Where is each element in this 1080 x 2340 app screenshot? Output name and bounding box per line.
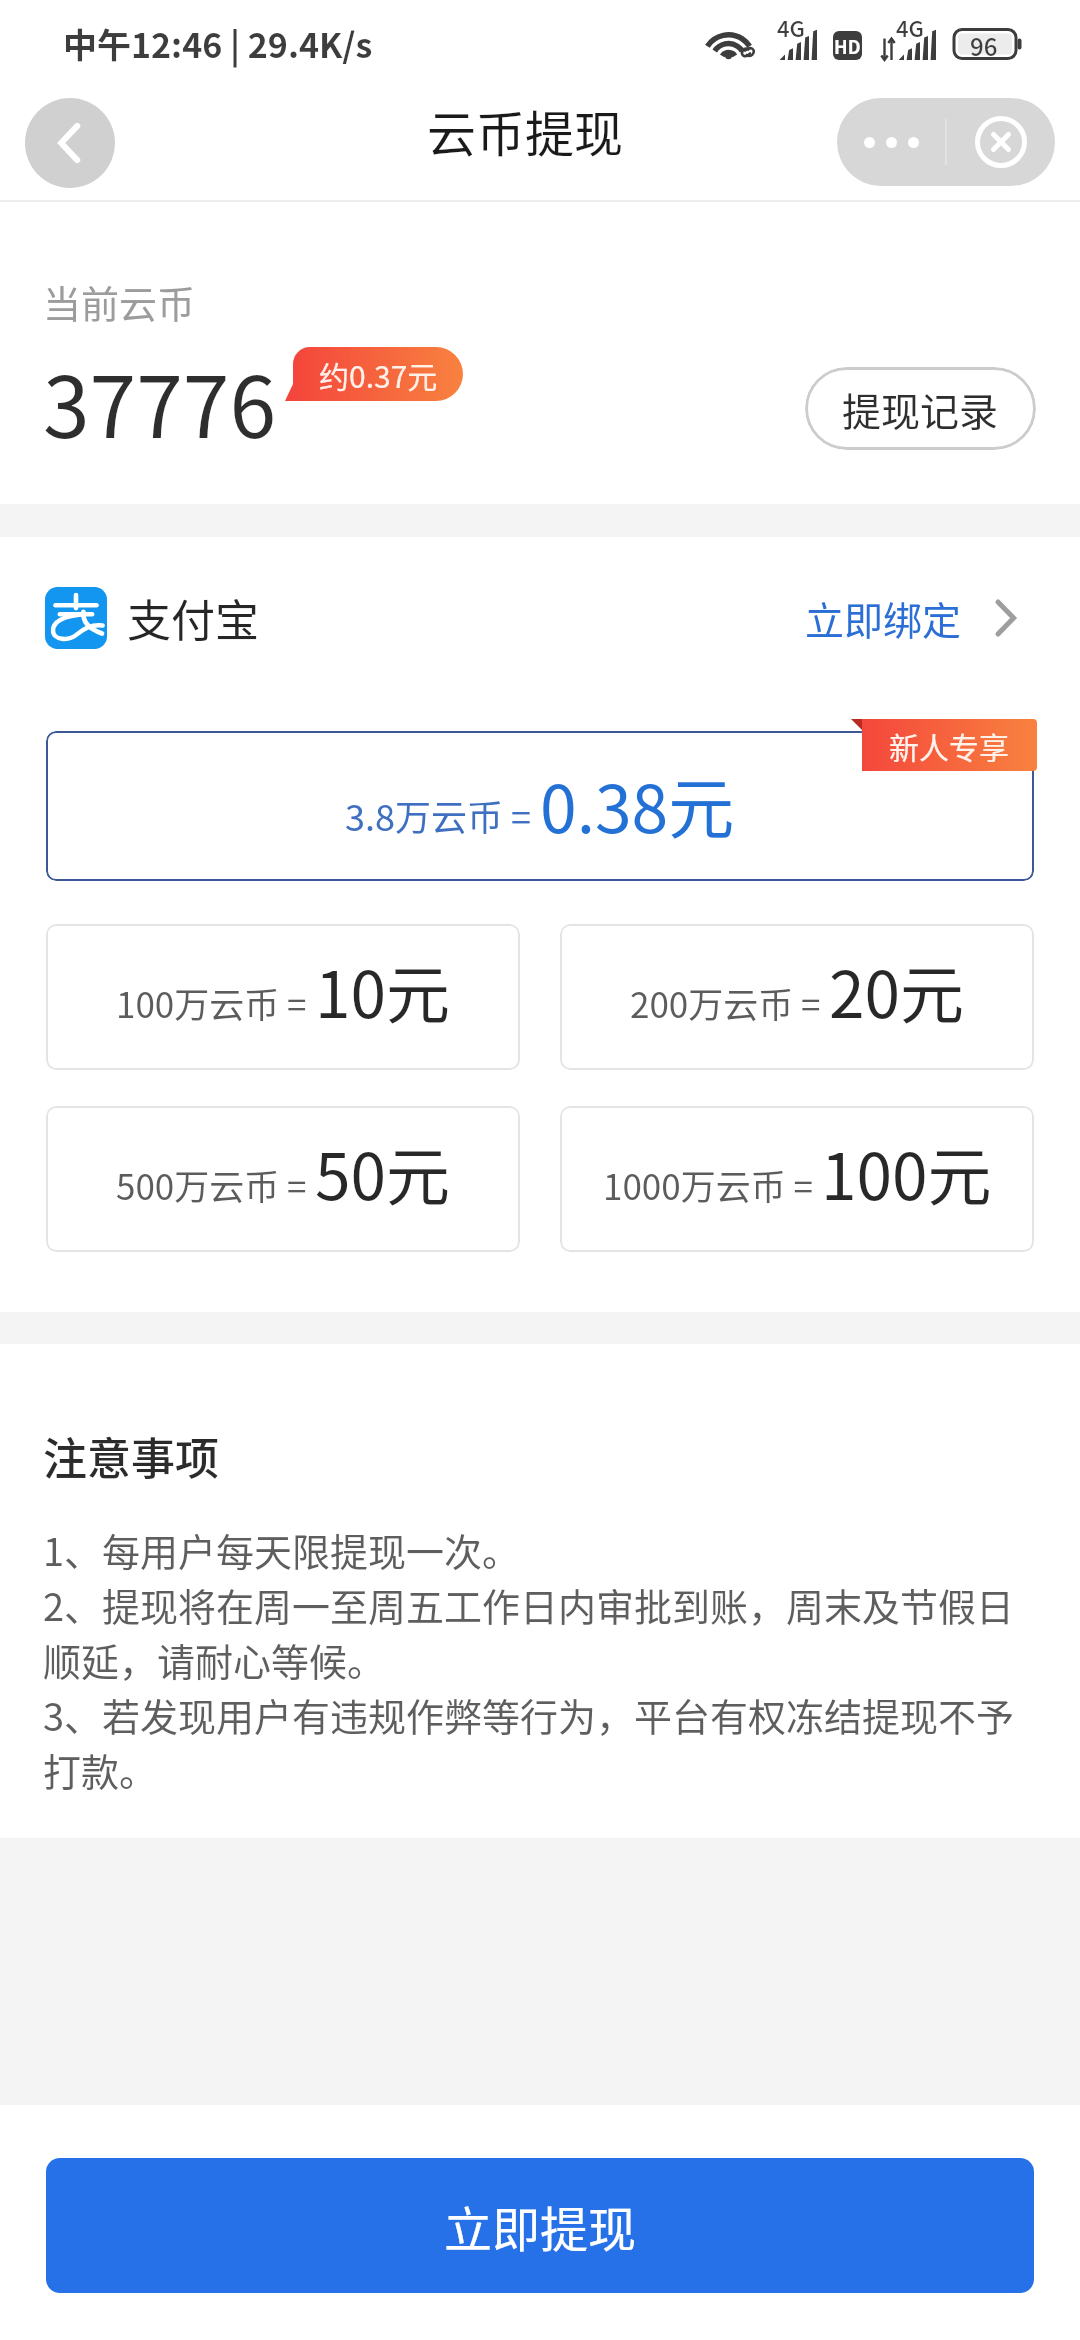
- staticText: 50元: [315, 1126, 451, 1219]
- staticText: 提现记录: [842, 381, 999, 437]
- staticText: 100万云币 =: [116, 977, 315, 1028]
- staticText: 当前云币: [43, 274, 196, 329]
- staticText: 约0.37元: [319, 353, 438, 396]
- button[interactable]: More options: [837, 98, 945, 186]
- staticText: 10元: [315, 944, 451, 1037]
- staticText: 注意事项: [43, 1424, 219, 1488]
- staticText: 1、每用户每天限提现一次。 2、提现将在周一至周五工作日内审批到账，周末及节假日…: [43, 1522, 1038, 1797]
- button[interactable]: 100万云币 =: [46, 924, 520, 1070]
- staticText: 支付宝: [127, 586, 259, 650]
- staticText: 立即提现: [444, 2191, 637, 2261]
- staticText: 20元: [829, 944, 965, 1037]
- staticText: 200万云币 =: [630, 977, 829, 1028]
- staticText: 1000万云币 =: [603, 1159, 821, 1210]
- staticText: 4G: [777, 11, 805, 43]
- button[interactable]: Close: [947, 98, 1055, 186]
- staticText: 中午12:46 | 29.4K/s: [63, 19, 373, 68]
- staticText: 新人专享: [889, 724, 1009, 767]
- staticText: 云币提现: [427, 95, 624, 166]
- staticText: 96: [970, 28, 998, 60]
- button[interactable]: Back: [25, 98, 115, 188]
- staticText: 0.38元: [540, 756, 735, 852]
- button[interactable]: 提现记录: [805, 367, 1036, 450]
- staticText: 500万云币 =: [116, 1159, 315, 1210]
- staticText: 立即绑定: [805, 590, 962, 646]
- staticText: 37776: [43, 341, 277, 463]
- button[interactable]: 1000万云币 =: [560, 1106, 1034, 1252]
- staticText: 4G: [896, 11, 924, 43]
- button[interactable]: 500万云币 =: [46, 1106, 520, 1252]
- button[interactable]: 支付宝: [0, 537, 1080, 699]
- staticText: 100元: [821, 1126, 992, 1219]
- staticText: HD: [834, 33, 861, 59]
- button[interactable]: 立即提现: [46, 2158, 1034, 2293]
- button[interactable]: 3.8万云币 =: [46, 731, 1034, 881]
- staticText: 3.8万云币 =: [345, 789, 540, 841]
- button[interactable]: 200万云币 =: [560, 924, 1034, 1070]
